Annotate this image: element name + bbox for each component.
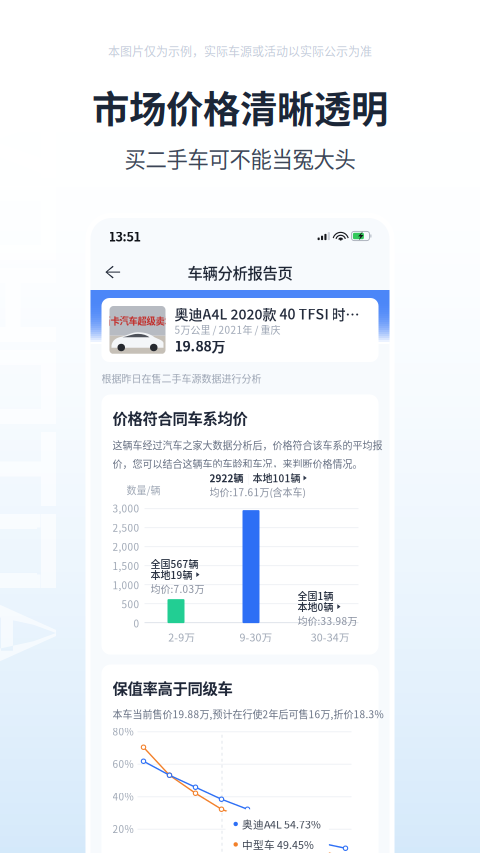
staticText: 均价:7.03万 [150, 581, 204, 596]
staticText: 奥迪A4L 54.73% [242, 816, 321, 832]
staticText: 本图片仅为示例，实际车源或活动以实际公示为准 [108, 42, 372, 60]
staticText: 保值率高于同级车 [112, 677, 232, 699]
staticText: 车辆分析报告页 [187, 261, 292, 283]
staticText: 均价:17.61万(含本车) [209, 485, 305, 499]
staticText: 60% [112, 756, 133, 771]
staticText: | [246, 471, 249, 485]
staticText: 价格符合同车系均价 [112, 406, 247, 429]
staticText: 买二手车可不能当冤大头 [124, 143, 355, 173]
staticText: 本车当前售价19.88万,预计在行使2年后可售16万,折价18.3% [112, 707, 383, 721]
staticText: 价，您可以结合这辆车的车龄和车况，来判断价格情况。 [112, 456, 362, 471]
staticText: 1,000 [112, 577, 139, 592]
button[interactable]: 返回 [90, 257, 134, 287]
staticText: 2,000 [112, 539, 139, 554]
staticText: 9-30万 [239, 629, 272, 644]
staticText: 2-9万 [168, 629, 195, 644]
staticText: 全国567辆 [150, 556, 198, 571]
staticText: 根据昨日在售二手车源数据进行分析 [101, 371, 261, 385]
staticText: 19.88万 [174, 335, 225, 356]
staticText: 本地19辆 [150, 567, 192, 582]
staticText: 本地101辆 [252, 471, 300, 485]
staticText: 全国1辆 [297, 588, 333, 603]
button[interactable]: 佰卡汽车超级卖场 [101, 298, 378, 362]
staticText: 5万公里 / 2021年 / 重庆 [174, 322, 280, 337]
staticText: 奥迪A4L 2020款 40 TFSI 时… [174, 303, 359, 324]
staticText: 13:51 [108, 227, 140, 245]
staticText: 中型车 49.45% [242, 837, 314, 852]
staticText: 佰卡汽车超级卖场 [101, 314, 173, 327]
staticText: 2922辆 [209, 471, 243, 485]
staticText: 30-34万 [311, 629, 350, 644]
staticText: 500 [121, 597, 139, 611]
staticText: 均价:33.98万 [297, 613, 357, 628]
staticText: 1,500 [112, 558, 139, 573]
staticText: 市场价格清晰透明 [92, 80, 388, 134]
staticText: 数量/辆 [126, 483, 160, 497]
staticText: 本地0辆 [297, 599, 333, 614]
staticText: 2,500 [112, 520, 139, 534]
staticText: 这辆车经过汽车之家大数据分析后，价格符合该车系的平均报 [112, 438, 382, 452]
staticText: 0 [133, 616, 139, 630]
staticText: 80% [112, 724, 133, 738]
staticText: 40% [112, 789, 133, 803]
staticText: 3,000 [112, 501, 139, 515]
staticText: 20% [112, 821, 133, 836]
